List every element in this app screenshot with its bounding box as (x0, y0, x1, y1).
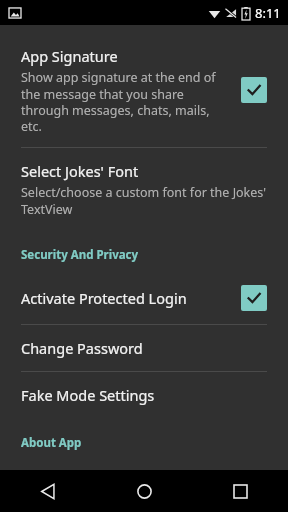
button[interactable]: Select Jokes' Font (0, 148, 288, 230)
staticText: Activate Protected Login (21, 288, 187, 308)
button[interactable]: Change Password (0, 325, 288, 371)
staticText: Select/choose a custom font for the Joke… (21, 184, 267, 217)
button[interactable]: Back (0, 470, 96, 512)
staticText: Select Jokes' Font (21, 161, 139, 181)
button[interactable]: Activate Protected Login (0, 272, 288, 324)
staticText: Fake Mode Settings (21, 385, 155, 405)
staticText: Security And Privacy (21, 247, 139, 263)
button[interactable]: Home (96, 470, 192, 512)
button[interactable]: Fake Mode Settings (0, 372, 288, 418)
button[interactable]: Toggle setting (241, 285, 267, 311)
staticText: 8:11 (255, 4, 281, 22)
button[interactable]: Recent apps (192, 470, 288, 512)
button[interactable]: App Signature (0, 33, 288, 147)
staticText: Change Password (21, 338, 143, 358)
staticText: Show app signature at the end of the mes… (21, 69, 229, 134)
staticText: About App (21, 435, 82, 451)
staticText: App Signature (21, 46, 118, 66)
button[interactable]: Toggle setting (241, 77, 267, 103)
